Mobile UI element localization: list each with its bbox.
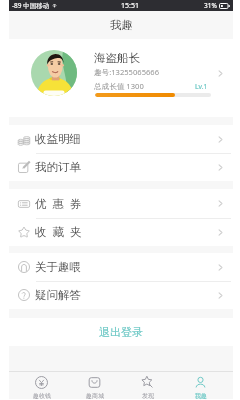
staticText: 趣号:13255065666 (94, 67, 160, 77)
button[interactable]: 退出登录 (83, 321, 159, 343)
button[interactable]: 我趣 (174, 372, 227, 399)
button[interactable]: 收 藏 夹 (9, 218, 233, 246)
staticText: 发现 (142, 392, 154, 400)
staticText: Lv.1 (195, 82, 208, 91)
button[interactable]: 关于趣喂 (9, 253, 233, 281)
staticText: 优 惠 券 (35, 196, 82, 212)
staticText: 我的订单 (35, 160, 81, 174)
staticText: 我趣 (195, 392, 207, 400)
staticText: 总成长值 1300 (94, 81, 144, 91)
staticText: -89 中国移动 (12, 1, 50, 10)
staticText: 15:51 (121, 1, 139, 11)
button[interactable]: 头像 (31, 50, 77, 96)
button[interactable]: 头像 (9, 39, 233, 117)
staticText: 收 藏 夹 (35, 224, 82, 240)
staticText: 退出登录 (99, 325, 143, 339)
button[interactable]: 发现 (121, 372, 174, 399)
staticText: 趣商城 (86, 392, 104, 400)
button[interactable]: 优 惠 券 (9, 189, 233, 218)
button[interactable]: 趣商城 (68, 372, 121, 399)
button[interactable]: 我的订单 (9, 153, 233, 181)
button[interactable]: 趣收钱 (15, 372, 68, 399)
staticText: 疑问解答 (35, 288, 81, 302)
button[interactable]: 收益明细 (9, 125, 233, 153)
staticText: 收益明细 (35, 132, 81, 146)
staticText: 关于趣喂 (35, 260, 81, 274)
staticText: 31% (204, 1, 217, 10)
button[interactable]: 疑问解答 (9, 281, 233, 309)
staticText: 海盗船长 (94, 51, 140, 65)
staticText: 我趣 (110, 18, 133, 32)
staticText: 趣收钱 (33, 392, 51, 400)
